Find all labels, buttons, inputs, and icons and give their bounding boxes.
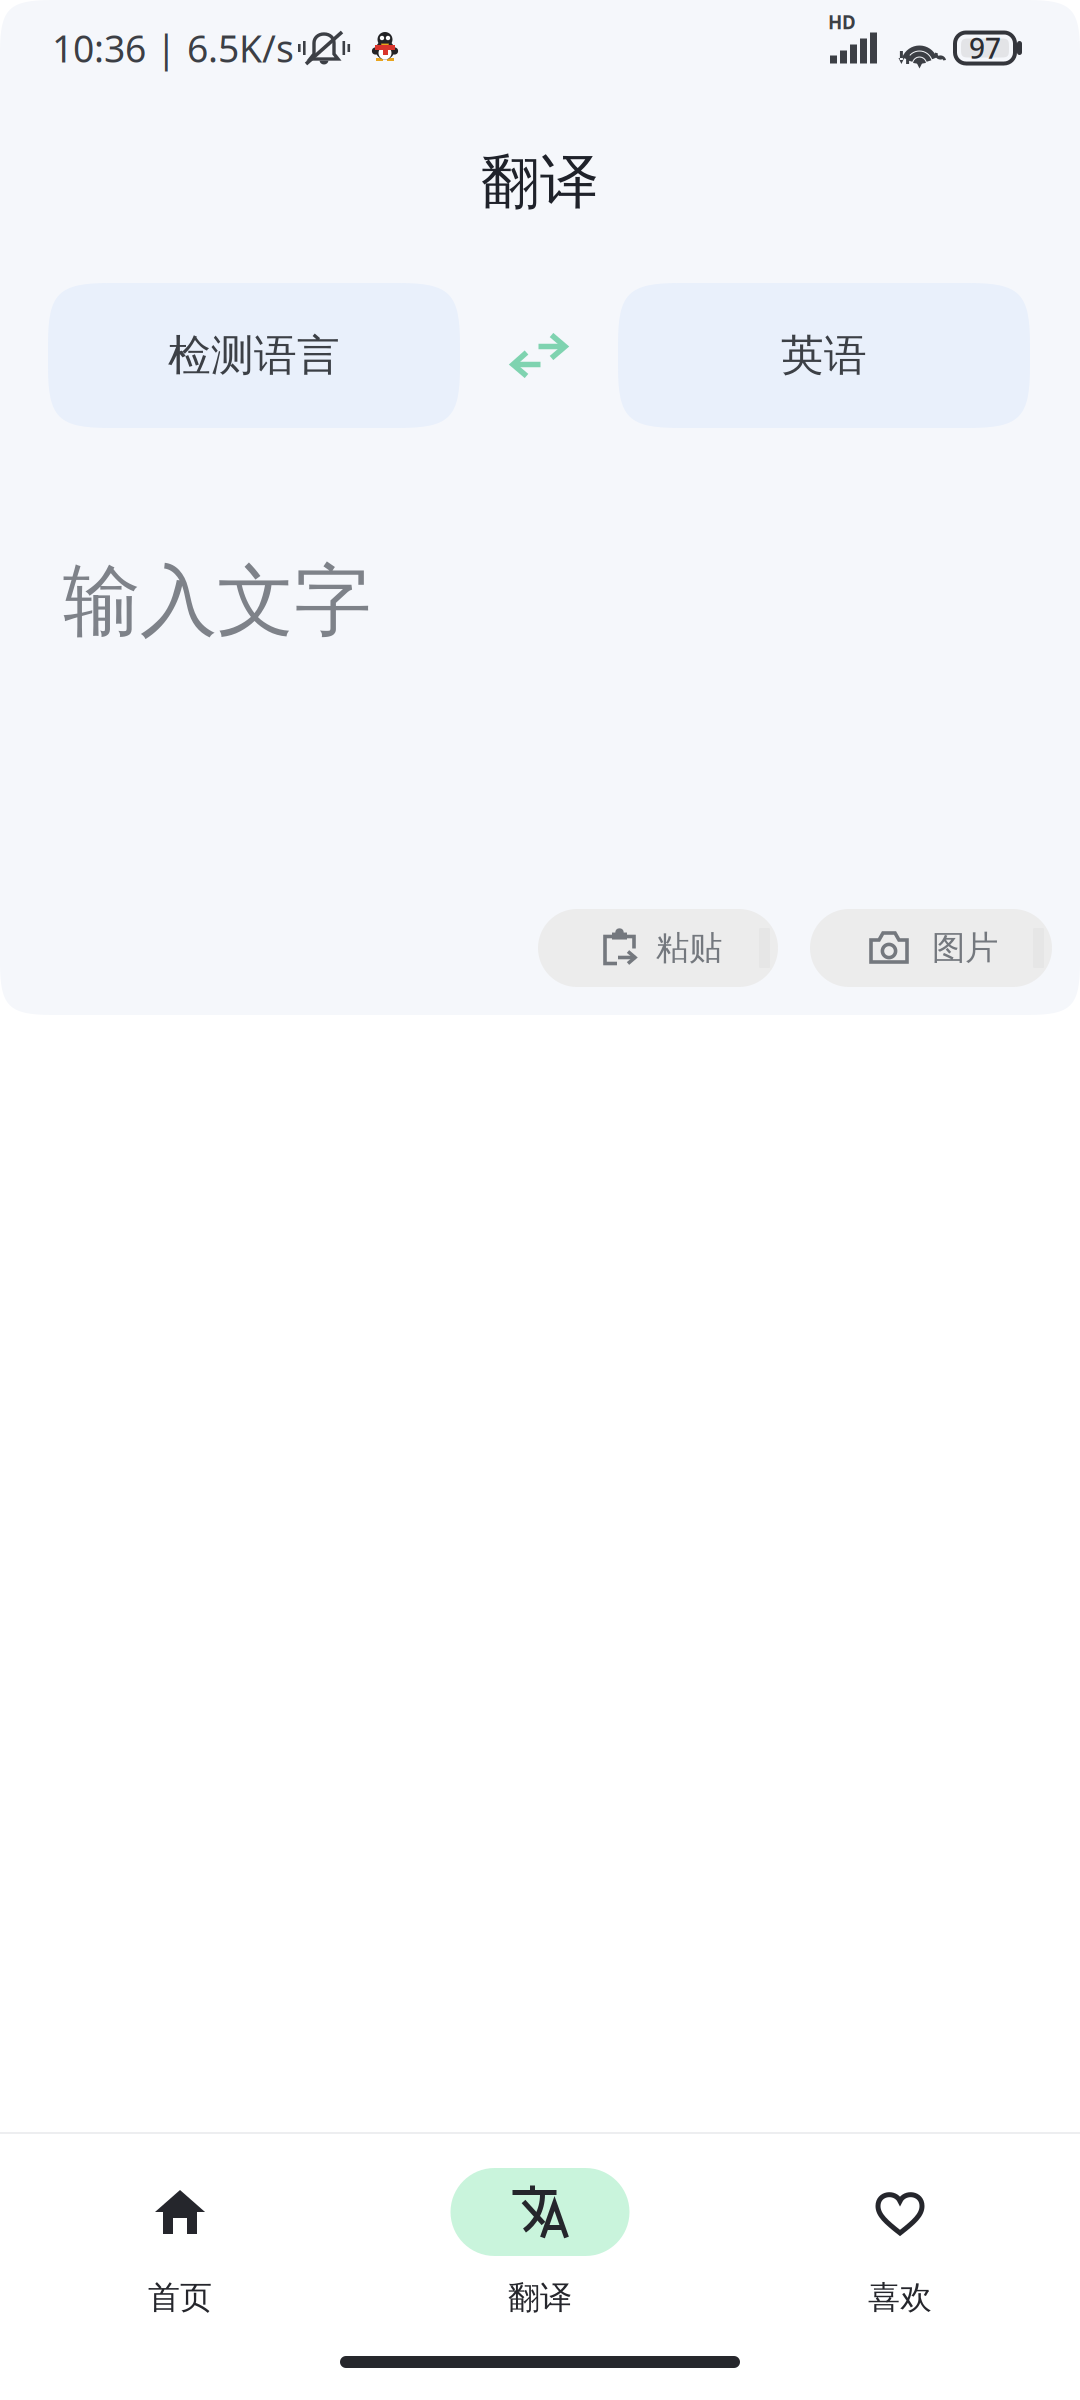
button[interactable]: 图片 <box>810 909 1052 987</box>
staticText: HD <box>828 10 856 34</box>
staticText: 喜欢 <box>868 2278 932 2317</box>
button[interactable]: 翻译 <box>360 2168 720 2317</box>
staticText: 翻译 <box>481 146 599 218</box>
staticText: 粘贴 <box>656 927 722 968</box>
staticText: 首页 <box>148 2278 212 2317</box>
staticText: 检测语言 <box>168 329 340 382</box>
button[interactable]: 首页 <box>0 2168 360 2317</box>
staticText: 10:36 | 6.5K/s <box>52 23 294 73</box>
button[interactable]: 输入文字 <box>0 428 1080 649</box>
button[interactable]: 检测语言 <box>48 283 460 428</box>
staticText: 翻译 <box>508 2278 572 2317</box>
staticText: 97 <box>969 29 1001 67</box>
staticText: 输入文字 <box>63 554 371 649</box>
staticText: 图片 <box>932 927 998 968</box>
staticText: 英语 <box>781 329 867 382</box>
button[interactable]: 粘贴 <box>538 909 778 987</box>
button[interactable]: 交换语言 <box>460 283 618 428</box>
button[interactable]: 英语 <box>618 283 1030 428</box>
button[interactable]: 喜欢 <box>720 2168 1080 2317</box>
